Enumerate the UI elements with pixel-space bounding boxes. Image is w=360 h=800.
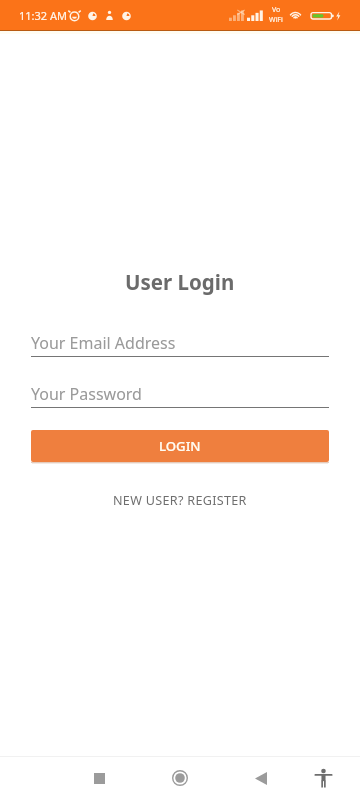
staticText: LOGIN bbox=[159, 437, 201, 455]
staticText: User Login bbox=[125, 268, 235, 296]
button[interactable]: Back bbox=[237, 756, 285, 800]
button[interactable]: Your Email Address bbox=[31, 332, 329, 362]
staticText: Your Password bbox=[31, 383, 142, 405]
button[interactable]: Your Password bbox=[31, 383, 329, 413]
button[interactable]: LOGIN bbox=[31, 430, 329, 462]
button[interactable]: Recents bbox=[75, 756, 123, 800]
staticText: Your Email Address bbox=[31, 332, 176, 354]
staticText: 11:32 AM bbox=[19, 8, 67, 23]
staticText: WiFi bbox=[269, 15, 283, 25]
button[interactable]: Accessibility bbox=[299, 756, 347, 800]
button[interactable]: NEW USER? REGISTER bbox=[103, 485, 257, 516]
staticText: Vo bbox=[272, 5, 281, 15]
button[interactable]: Home bbox=[156, 756, 204, 800]
